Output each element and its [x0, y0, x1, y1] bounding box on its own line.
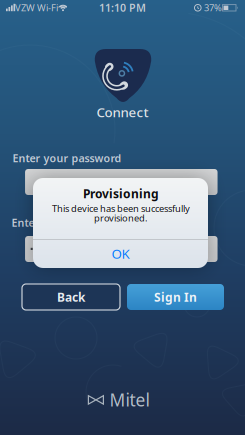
staticText: Mitel — [109, 388, 149, 411]
staticText: 11:10 PM — [99, 0, 146, 15]
staticText: Provisioning — [83, 185, 159, 201]
staticText: provisioned. — [94, 212, 148, 224]
staticText: Enter your password — [12, 151, 121, 165]
staticText: Back — [57, 289, 85, 305]
staticText: 37% — [204, 1, 222, 14]
staticText: Connect — [96, 103, 148, 121]
button[interactable]: Back — [22, 284, 120, 310]
staticText: Sign In — [154, 289, 197, 305]
button[interactable]: Sign In — [127, 284, 224, 310]
button[interactable]: OK — [33, 239, 208, 267]
staticText: OK — [111, 245, 129, 262]
staticText: Enter your username — [11, 215, 122, 230]
staticText: VZW Wi-Fi — [15, 1, 58, 14]
staticText: This device has been successfully — [52, 202, 190, 215]
